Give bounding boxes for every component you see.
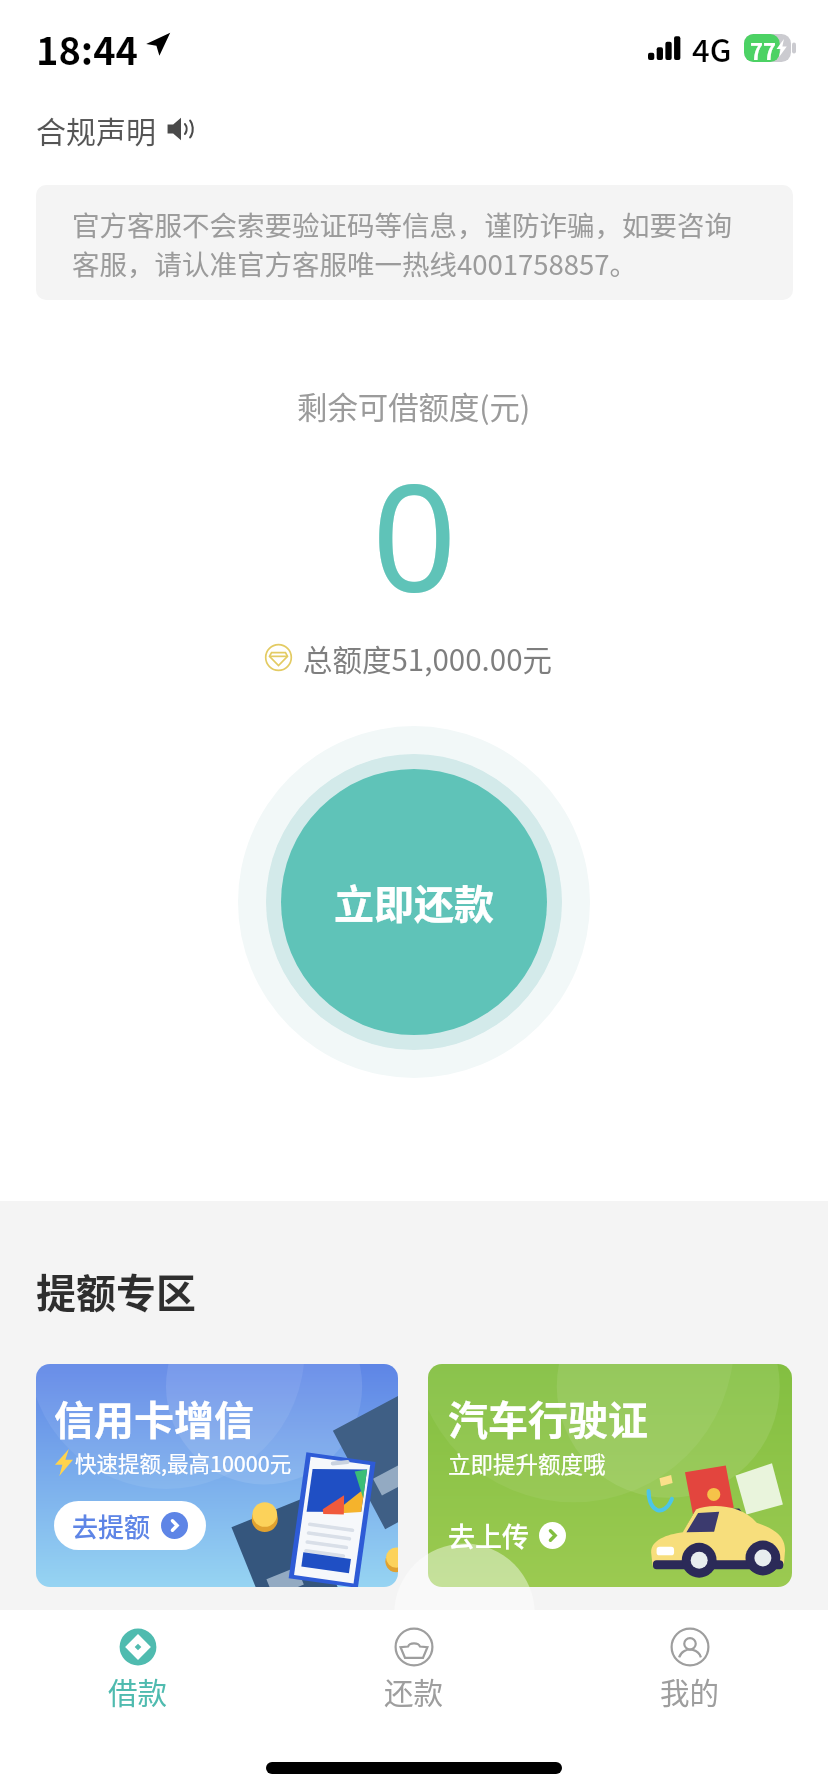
button[interactable]: 汽车行驶证: [428, 1364, 792, 1587]
staticText: 0: [372, 434, 457, 634]
button[interactable]: 立即还款: [281, 769, 547, 1035]
staticText: 官方客服不会索要验证码等信息，谨防诈骗，如要咨询客服，请认准官方客服唯一热线40…: [72, 204, 752, 283]
staticText: 总额度51,000.00元: [303, 637, 553, 677]
staticText: 剩余可借额度(元): [297, 384, 531, 428]
staticText: 还款: [384, 1670, 444, 1713]
button[interactable]: 播放语音: [164, 112, 198, 146]
staticText: 信用卡增信: [54, 1389, 254, 1447]
button[interactable]: 我的: [552, 1624, 828, 1713]
button[interactable]: 信用卡增信: [36, 1364, 398, 1587]
staticText: 提额专区: [36, 1262, 196, 1320]
staticText: 18:44: [36, 21, 139, 65]
staticText: 快速提额,最高10000元: [75, 1447, 292, 1478]
staticText: 汽车行驶证: [448, 1389, 648, 1447]
staticText: 借款: [108, 1670, 168, 1713]
staticText: 我的: [660, 1670, 720, 1713]
staticText: 4G: [692, 26, 732, 70]
staticText: 77: [750, 34, 776, 62]
staticText: 去上传: [448, 1516, 529, 1555]
button[interactable]: 借款: [0, 1624, 276, 1713]
staticText: 立即还款: [334, 873, 494, 931]
staticText: 去提额: [72, 1507, 151, 1545]
button[interactable]: 还款: [276, 1624, 552, 1713]
staticText: 合规声明: [36, 108, 156, 151]
staticText: 立即提升额度哦: [448, 1447, 606, 1480]
